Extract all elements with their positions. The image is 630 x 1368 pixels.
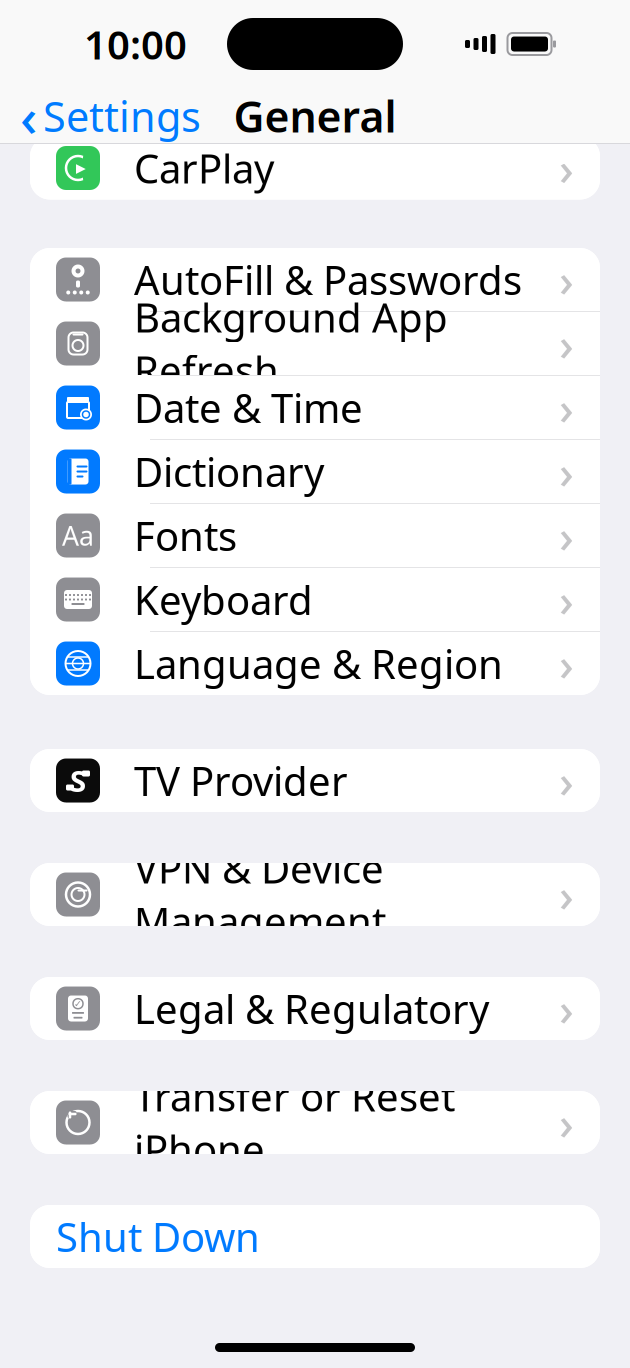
button[interactable]: AutoFill & Passwords (30, 248, 600, 311)
staticText: › (559, 569, 574, 630)
button[interactable]: Dictionary (30, 440, 600, 503)
staticText: Aa (62, 518, 94, 553)
staticText: Settings (43, 89, 201, 143)
staticText: S (70, 761, 86, 800)
button[interactable]: ▶ (30, 136, 600, 199)
staticText: Language & Region (134, 637, 503, 690)
staticText: Keyboard (134, 573, 313, 626)
staticText: 10:00 (84, 17, 187, 70)
staticText: › (559, 249, 574, 310)
staticText: Shut Down (56, 1210, 260, 1263)
staticText: AutoFill & Passwords (134, 253, 522, 306)
staticText: Dictionary (134, 445, 324, 498)
staticText: Background App Refresh (134, 290, 448, 397)
staticText: ‹ (20, 81, 37, 151)
button[interactable]: Language & Region (30, 632, 600, 695)
button[interactable]: Transfer or Reset iPhone (30, 1091, 600, 1154)
staticText: CarPlay (134, 141, 274, 194)
staticText: › (559, 750, 574, 811)
staticText: Date & Time (134, 381, 363, 434)
button[interactable]: S (30, 749, 600, 812)
staticText: › (559, 138, 574, 198)
button[interactable]: VPN & Device Management (30, 863, 600, 926)
staticText: › (559, 505, 574, 566)
staticText: ▶ (75, 160, 85, 175)
button[interactable]: ✓ (30, 977, 600, 1040)
staticText: ✓ (74, 998, 82, 1009)
staticText: › (559, 441, 574, 502)
staticText: › (559, 978, 574, 1039)
staticText: VPN & Device Management (134, 841, 386, 948)
staticText: › (559, 377, 574, 438)
button[interactable]: Date & Time (30, 376, 600, 439)
staticText: Transfer or Reset iPhone (134, 1069, 455, 1176)
button[interactable]: Background App Refresh (30, 312, 600, 375)
staticText: TV Provider (134, 754, 348, 807)
staticText: General (233, 88, 396, 144)
button[interactable]: ‹ (0, 88, 215, 144)
staticText: › (559, 1092, 574, 1153)
staticText: › (559, 633, 574, 694)
staticText: › (559, 313, 574, 374)
button[interactable]: Aa (30, 504, 600, 567)
staticText: Fonts (134, 509, 237, 562)
button[interactable]: Keyboard (30, 568, 600, 631)
staticText: Legal & Regulatory (134, 982, 489, 1035)
button[interactable]: Shut Down (30, 1205, 600, 1268)
staticText: › (559, 864, 574, 925)
